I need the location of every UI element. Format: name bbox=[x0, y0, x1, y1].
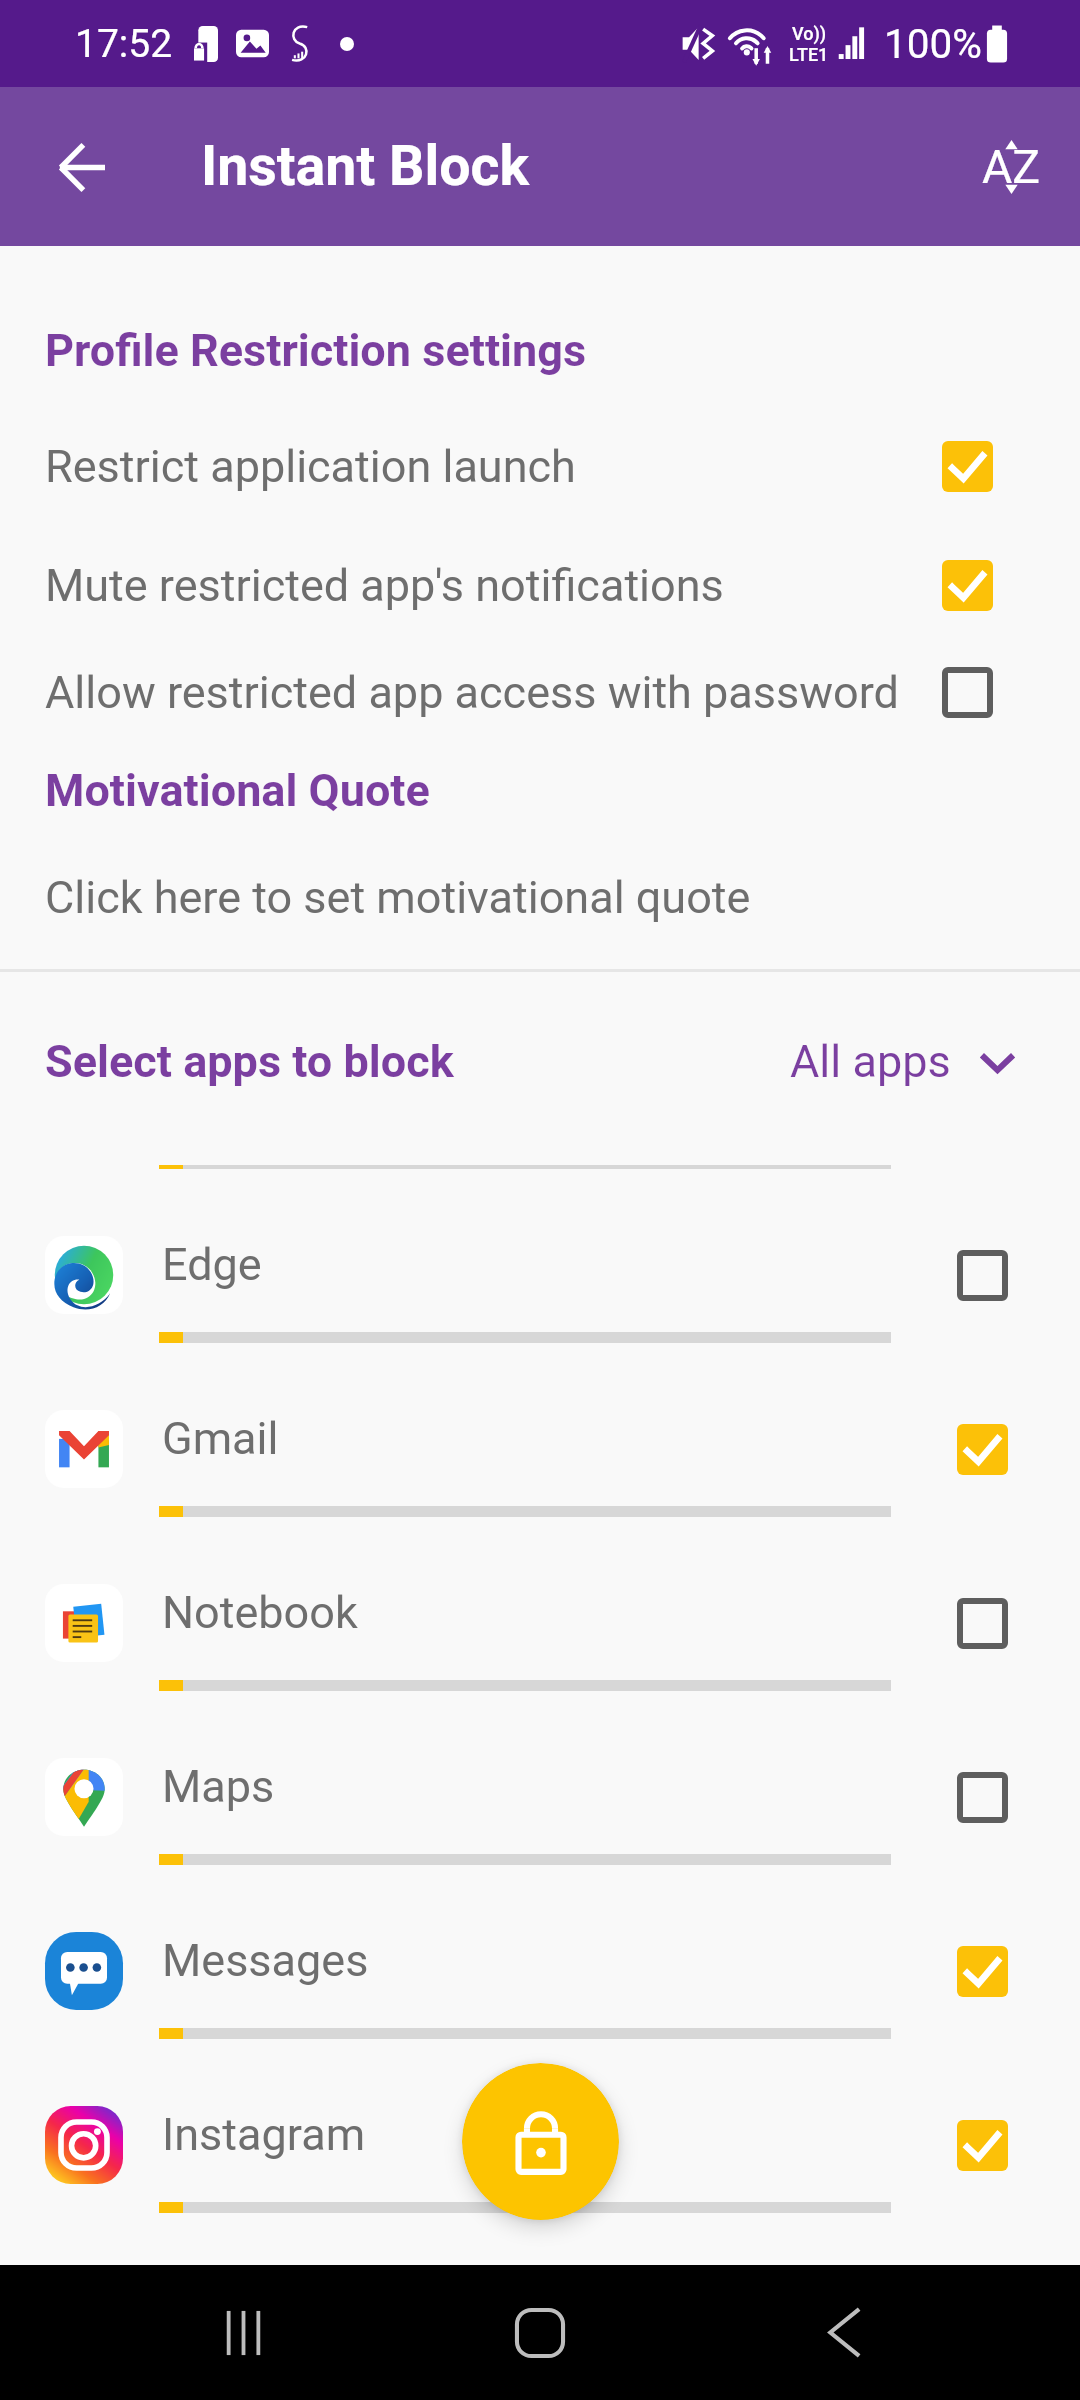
staticText: LTE1 bbox=[789, 44, 829, 65]
button[interactable]: Navigate up bbox=[9, 95, 153, 239]
staticText: Vo)) bbox=[792, 23, 827, 44]
staticText: Instant Block bbox=[201, 134, 530, 199]
button[interactable]: Allow restricted app access with passwor… bbox=[0, 660, 1080, 725]
staticText: Profile Restriction settings bbox=[45, 324, 587, 377]
button[interactable]: Home bbox=[468, 2265, 612, 2400]
staticText: Maps bbox=[162, 1760, 275, 1813]
staticText: AZ bbox=[982, 140, 1041, 194]
staticText: Messages bbox=[162, 1934, 369, 1987]
button[interactable]: Click here to set motivational quote bbox=[0, 862, 1080, 933]
staticText: 100% bbox=[884, 20, 982, 67]
staticText: Edge bbox=[162, 1238, 262, 1291]
button[interactable]: Back bbox=[772, 2265, 916, 2400]
button[interactable]: Lock apps bbox=[462, 2063, 619, 2220]
button[interactable]: Recent apps bbox=[171, 2265, 315, 2400]
staticText: Notebook bbox=[162, 1586, 358, 1639]
staticText: Mute restricted app's notifications bbox=[45, 559, 724, 612]
button[interactable]: Mute restricted app's notifications bbox=[0, 553, 1080, 618]
button[interactable]: Restrict application launch bbox=[0, 434, 1080, 499]
button[interactable]: Gmail bbox=[0, 1399, 1080, 1573]
staticText: Allow restricted app access with passwor… bbox=[45, 666, 899, 719]
staticText: Click here to set motivational quote bbox=[45, 871, 751, 924]
staticText: Restrict application launch bbox=[45, 440, 576, 493]
button[interactable]: Sort alphabetically bbox=[951, 107, 1071, 227]
button[interactable]: Instagram bbox=[0, 2095, 1080, 2265]
button[interactable]: Messages bbox=[0, 1921, 1080, 2095]
staticText: Motivational Quote bbox=[45, 764, 430, 817]
button[interactable]: All apps bbox=[778, 1023, 1029, 1100]
button[interactable]: Maps bbox=[0, 1747, 1080, 1921]
staticText: Instagram bbox=[162, 2108, 366, 2161]
staticText: Select apps to block bbox=[45, 1035, 454, 1088]
staticText: All apps bbox=[790, 1035, 951, 1088]
staticText: Gmail bbox=[162, 1412, 279, 1465]
button[interactable]: Edge bbox=[0, 1225, 1080, 1399]
button[interactable]: Notebook bbox=[0, 1573, 1080, 1747]
staticText: 17:52 bbox=[75, 21, 173, 67]
